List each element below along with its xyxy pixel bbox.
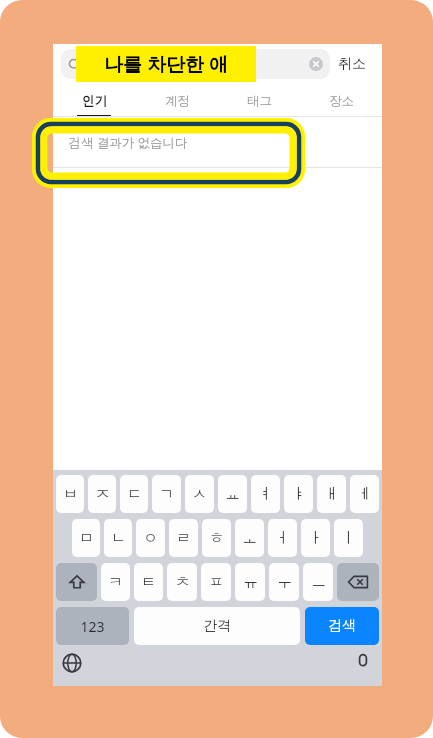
- staticText: ㅁ: [79, 529, 94, 548]
- button[interactable]: Clear search: [61, 49, 330, 79]
- staticText: ㄴ: [111, 529, 126, 548]
- button[interactable]: ㅓ: [268, 519, 297, 557]
- staticText: ㅂ: [63, 485, 78, 504]
- staticText: ㅓ: [275, 529, 290, 548]
- staticText: ㅇ: [143, 529, 158, 548]
- staticText: ㄹ: [176, 529, 191, 548]
- button[interactable]: ㅊ: [167, 563, 197, 601]
- button[interactable]: ㅗ: [235, 519, 264, 557]
- button[interactable]: 123: [56, 607, 129, 645]
- button[interactable]: ㅋ: [101, 563, 130, 601]
- staticText: ㄱ: [159, 485, 174, 504]
- button[interactable]: ㄱ: [152, 475, 181, 513]
- staticText: 태그: [247, 93, 272, 109]
- staticText: ㅣ: [341, 529, 356, 548]
- staticText: 검색 결과가 없습니다: [68, 134, 188, 151]
- button[interactable]: 계정: [136, 84, 218, 117]
- staticText: 장소: [329, 93, 354, 109]
- staticText: ㅠ: [243, 573, 258, 592]
- button[interactable]: 검색: [305, 607, 379, 645]
- staticText: ㅜ: [277, 573, 292, 592]
- staticText: ㅛ: [225, 485, 240, 504]
- staticText: 인기: [82, 93, 107, 109]
- staticText: ㅌ: [141, 573, 156, 592]
- staticText: 123: [80, 617, 105, 636]
- staticText: 취소: [338, 55, 366, 73]
- button[interactable]: ㅏ: [301, 519, 330, 557]
- staticText: ㅊ: [175, 573, 190, 592]
- staticText: ㅅ: [192, 485, 207, 504]
- button[interactable]: ㅈ: [88, 475, 116, 513]
- button[interactable]: 인기: [53, 84, 136, 117]
- button[interactable]: ㅕ: [251, 475, 280, 513]
- button[interactable]: Clear search: [309, 57, 323, 71]
- staticText: ㅗ: [242, 529, 257, 548]
- button[interactable]: ㅐ: [317, 475, 346, 513]
- staticText: ㅈ: [95, 485, 110, 504]
- button[interactable]: Backspace: [337, 563, 379, 601]
- button[interactable]: ㅣ: [334, 519, 363, 557]
- staticText: ㅑ: [291, 485, 306, 504]
- button[interactable]: 태그: [218, 84, 300, 117]
- staticText: ㅍ: [209, 573, 224, 592]
- button[interactable]: ㅂ: [56, 475, 84, 513]
- button[interactable]: ㅎ: [202, 519, 231, 557]
- staticText: ㅎ: [209, 529, 224, 548]
- button[interactable]: ㄹ: [169, 519, 198, 557]
- button[interactable]: ㅛ: [218, 475, 247, 513]
- staticText: 나를 차단한 애: [104, 51, 228, 77]
- staticText: ㅋ: [108, 573, 123, 592]
- button[interactable]: ㅅ: [185, 475, 214, 513]
- staticText: ㅔ: [357, 485, 372, 504]
- button[interactable]: ㅍ: [201, 563, 231, 601]
- button[interactable]: 간격: [134, 607, 300, 645]
- button[interactable]: ㄷ: [120, 475, 148, 513]
- staticText: 계정: [165, 93, 190, 109]
- staticText: ㅡ: [311, 573, 326, 592]
- button[interactable]: ㄴ: [104, 519, 132, 557]
- button[interactable]: ㅁ: [72, 519, 100, 557]
- button[interactable]: 장소: [300, 84, 382, 117]
- staticText: ㅐ: [324, 485, 339, 504]
- staticText: 검색: [328, 617, 356, 635]
- button[interactable]: Voice input: [353, 653, 373, 673]
- button[interactable]: ㅡ: [303, 563, 333, 601]
- staticText: ㅕ: [258, 485, 273, 504]
- button[interactable]: ㅑ: [284, 475, 313, 513]
- button[interactable]: Change keyboard language: [62, 653, 82, 673]
- button[interactable]: ㅇ: [136, 519, 165, 557]
- staticText: ㅏ: [308, 529, 323, 548]
- staticText: 간격: [203, 617, 231, 635]
- button[interactable]: ㅠ: [235, 563, 265, 601]
- button[interactable]: 취소: [330, 49, 374, 79]
- button[interactable]: ㅌ: [134, 563, 163, 601]
- button[interactable]: Shift: [56, 563, 97, 601]
- button[interactable]: ㅜ: [269, 563, 299, 601]
- button[interactable]: ㅔ: [350, 475, 379, 513]
- button[interactable]: 검색 결과가 없습니다: [53, 117, 382, 168]
- staticText: ㄷ: [127, 485, 142, 504]
